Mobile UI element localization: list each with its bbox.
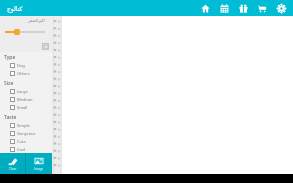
button[interactable]: Cart: [256, 2, 268, 14]
staticText: Gorgeous: [17, 131, 36, 136]
button[interactable]: Simple: [3, 121, 52, 129]
button[interactable]: Large: [3, 87, 52, 95]
staticText: Clear: [9, 167, 17, 171]
staticText: اكبر/اصغر: [28, 18, 45, 23]
staticText: Simple: [17, 123, 30, 128]
button[interactable]: Resize: [42, 43, 49, 50]
staticText: Cute: [17, 139, 26, 144]
staticText: Taste: [4, 114, 17, 121]
staticText: Size: [4, 80, 14, 87]
button[interactable]: Gorgeous: [3, 129, 52, 137]
staticText: Medium: [17, 97, 33, 102]
button[interactable]: Gifts: [237, 2, 249, 14]
staticText: Image: [34, 167, 44, 171]
button[interactable]: Home: [199, 2, 211, 14]
button[interactable]: Medium: [3, 95, 52, 103]
staticText: Dog: [17, 63, 25, 68]
button[interactable]: Calendar: [218, 2, 230, 14]
staticText: Others: [17, 71, 30, 76]
staticText: كتالوج: [7, 5, 23, 12]
button[interactable]: Dog: [3, 61, 52, 69]
button[interactable]: Settings: [275, 2, 287, 14]
button[interactable]: Size slider: [5, 28, 45, 36]
button[interactable]: Image: [26, 153, 52, 174]
button[interactable]: Cute: [3, 137, 52, 145]
button[interactable]: Others: [3, 69, 52, 77]
button[interactable]: Small: [3, 103, 52, 111]
staticText: Large: [17, 89, 28, 94]
staticText: Cool: [17, 147, 26, 152]
button[interactable]: Resize panel: [52, 16, 62, 174]
button[interactable]: Cool: [3, 145, 52, 153]
button[interactable]: Clear: [0, 153, 25, 174]
staticText: Small: [17, 105, 28, 110]
staticText: Type: [4, 54, 16, 61]
